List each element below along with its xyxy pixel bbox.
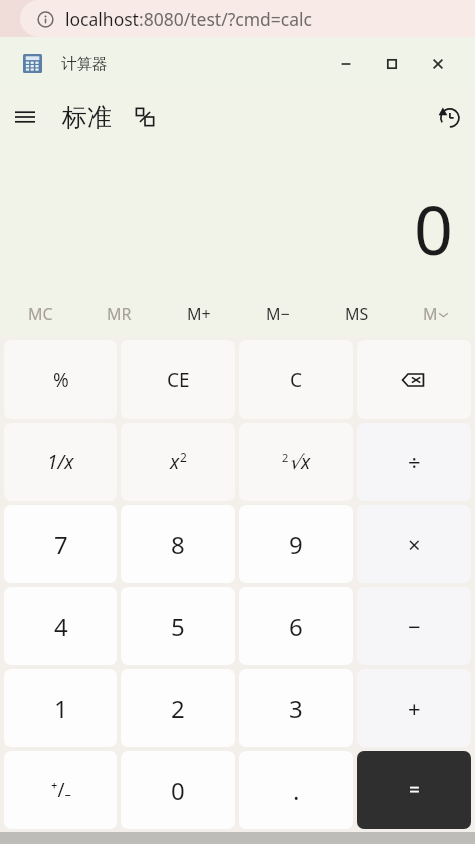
button[interactable]: . [239, 751, 353, 829]
staticText: = [409, 777, 420, 803]
button[interactable]: Maximize [369, 37, 415, 90]
staticText: MR [107, 303, 132, 325]
button[interactable]: 5 [121, 587, 235, 665]
button[interactable]: Plus minus [4, 751, 117, 829]
button[interactable]: Keep on top [126, 98, 164, 136]
button[interactable]: 7 [4, 505, 117, 583]
staticText: . [293, 774, 300, 807]
staticText: 2 [180, 449, 187, 465]
button[interactable]: CE [121, 340, 235, 419]
button[interactable]: M− [238, 291, 317, 337]
button[interactable]: 标准 [62, 102, 112, 133]
staticText: 5 [171, 610, 185, 643]
staticText: 7 [54, 528, 68, 561]
staticText: 1 [54, 692, 68, 725]
button[interactable]: Close [415, 37, 461, 90]
staticText: M− [266, 303, 290, 325]
button[interactable]: C [239, 340, 353, 419]
staticText: localhost [65, 7, 139, 31]
staticText: % [53, 367, 69, 393]
button[interactable]: % [4, 340, 117, 419]
staticText: 标准 [62, 102, 112, 133]
staticText: 9 [289, 528, 303, 561]
button[interactable]: Square [121, 423, 235, 501]
staticText: MS [345, 303, 369, 325]
button[interactable]: Site information [20, 0, 475, 37]
staticText: x [170, 449, 180, 475]
staticText: − [408, 611, 421, 641]
button[interactable]: History [423, 91, 475, 143]
button[interactable]: M [396, 291, 475, 337]
button[interactable]: MR [80, 291, 159, 337]
button[interactable]: Backspace [357, 340, 471, 419]
staticText: CE [167, 367, 190, 393]
staticText: 0 [414, 182, 453, 275]
staticText: 6 [289, 610, 303, 643]
button[interactable]: MS [317, 291, 396, 337]
other: Site information [37, 11, 54, 28]
staticText: 0 [171, 774, 185, 807]
staticText: 3 [289, 692, 303, 725]
button[interactable]: Reciprocal [4, 423, 117, 501]
button[interactable]: − [357, 587, 471, 665]
button[interactable]: 0 [121, 751, 235, 829]
button[interactable]: Open Navigation [0, 92, 50, 142]
button[interactable]: 9 [239, 505, 353, 583]
button[interactable]: 8 [121, 505, 235, 583]
staticText: × [408, 529, 421, 559]
button[interactable]: 4 [4, 587, 117, 665]
staticText: C [290, 367, 303, 393]
staticText: 8 [171, 528, 185, 561]
staticText: 1/x [47, 449, 74, 475]
button[interactable]: Minimize [323, 37, 369, 90]
staticText: M+ [187, 303, 211, 325]
staticText: 计算器 [61, 54, 108, 74]
staticText: M [423, 303, 438, 325]
button[interactable]: × [357, 505, 471, 583]
staticText: ⁺/₋ [51, 777, 71, 803]
staticText: MC [28, 303, 53, 325]
staticText: √x [289, 449, 311, 475]
button[interactable]: 2 [121, 669, 235, 747]
button[interactable]: Square root [239, 423, 353, 501]
staticText: 4 [54, 610, 68, 643]
staticText: + [408, 693, 421, 723]
button[interactable]: 6 [239, 587, 353, 665]
staticText: 2 [282, 450, 289, 465]
button[interactable]: M+ [159, 291, 238, 337]
button[interactable]: 3 [239, 669, 353, 747]
button[interactable]: + [357, 669, 471, 747]
staticText: ÷ [408, 447, 421, 477]
button[interactable]: MC [0, 291, 80, 337]
button[interactable]: = [357, 751, 471, 829]
button[interactable]: 1 [4, 669, 117, 747]
button[interactable]: ÷ [357, 423, 471, 501]
staticText: 2 [171, 692, 185, 725]
staticText: :8080/test/?cmd=calc [139, 7, 312, 31]
